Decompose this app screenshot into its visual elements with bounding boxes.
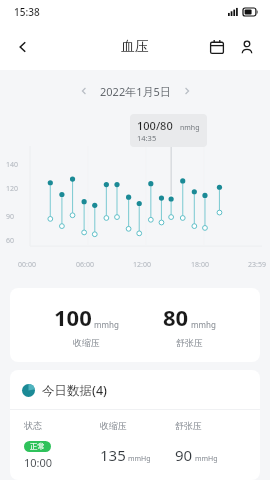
staticText: 120 xyxy=(6,184,19,194)
staticText: nmhg xyxy=(180,123,200,133)
button[interactable]: 今日数据(4) xyxy=(10,370,260,409)
staticText: 正常 xyxy=(30,442,45,451)
staticText: 00:00 xyxy=(18,260,36,270)
button[interactable]: 正常 xyxy=(10,437,260,480)
staticText: 今日数据(4) xyxy=(42,382,107,399)
button[interactable]: Profile xyxy=(232,32,262,62)
staticText: mmHg xyxy=(195,454,218,464)
staticText: 血压 xyxy=(121,38,149,56)
staticText: 90 xyxy=(175,445,193,465)
staticText: 10:00 xyxy=(24,455,53,468)
staticText: 18:00 xyxy=(191,260,209,270)
staticText: 135 xyxy=(100,445,126,465)
staticText: 收缩压 xyxy=(100,420,175,431)
staticText: 收缩压 xyxy=(73,337,100,348)
staticText: mmhg xyxy=(94,319,119,330)
staticText: 状态 xyxy=(24,420,100,431)
staticText: mmHg xyxy=(128,454,151,464)
staticText: 12:00 xyxy=(133,260,151,270)
staticText: 100/80 xyxy=(137,118,173,133)
button[interactable]: Calendar xyxy=(202,32,232,62)
staticText: 14:35 xyxy=(137,133,157,143)
staticText: 舒张压 xyxy=(175,420,250,431)
staticText: 2022年1月5日 xyxy=(100,84,171,99)
staticText: 80 xyxy=(163,302,189,332)
staticText: 60 xyxy=(6,236,15,246)
button[interactable]: 100 xyxy=(10,288,260,362)
button[interactable]: Previous day xyxy=(74,81,94,101)
staticText: 100 xyxy=(54,302,92,332)
button[interactable]: Next day xyxy=(177,81,197,101)
staticText: mmhg xyxy=(191,319,216,330)
staticText: 15:38 xyxy=(14,5,40,19)
button[interactable]: 100/80 xyxy=(130,114,207,147)
staticText: 140 xyxy=(6,160,19,170)
staticText: 90 xyxy=(6,212,15,222)
staticText: 23:59 xyxy=(248,260,266,270)
staticText: 舒张压 xyxy=(176,337,203,348)
staticText: 06:00 xyxy=(76,260,94,270)
button[interactable]: Back xyxy=(4,28,42,66)
